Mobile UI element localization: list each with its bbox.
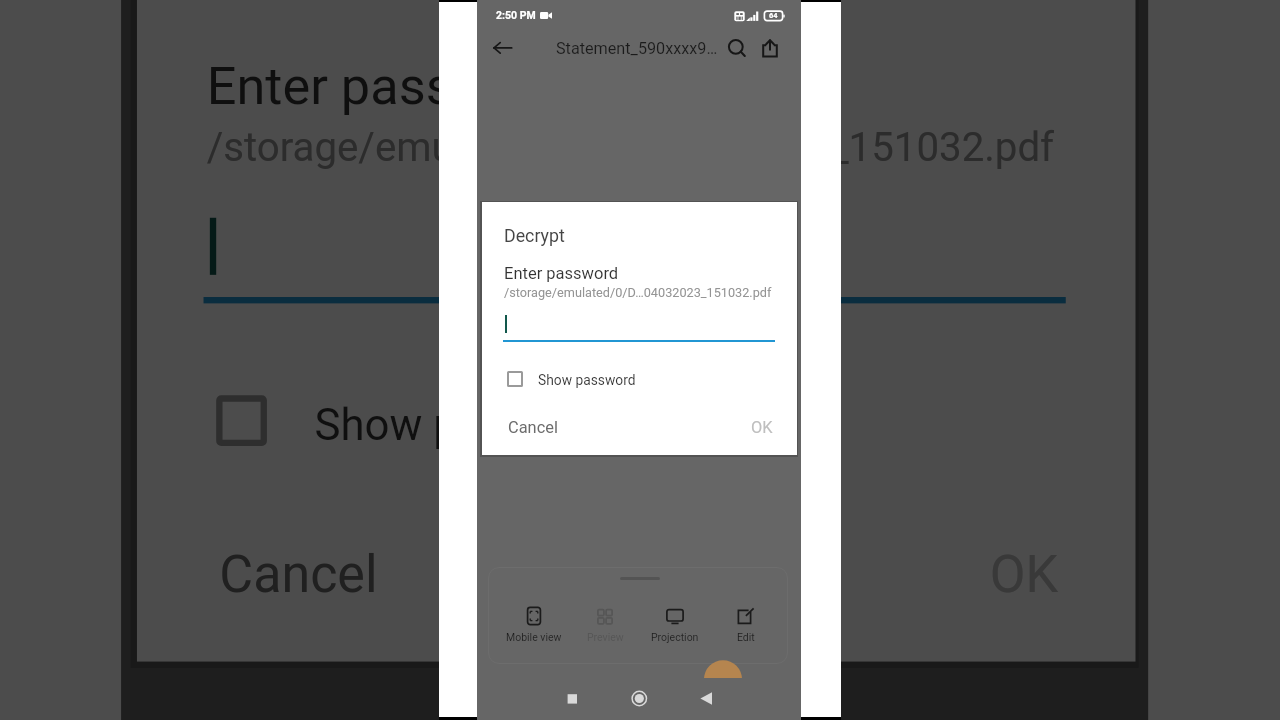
staticText: Mobile view — [506, 631, 562, 643]
staticText: OK — [990, 544, 1059, 604]
button[interactable]: Show password — [197, 364, 799, 484]
staticText: Enter password — [207, 56, 571, 116]
button[interactable]: Mobile view — [499, 598, 569, 650]
staticText: Show password — [314, 398, 625, 449]
button[interactable]: Recent apps — [549, 683, 589, 715]
staticText: Show password — [538, 372, 636, 388]
staticText: /storage/emulated/0/D…04032023_151032.pd… — [207, 123, 1056, 170]
button[interactable]: OK — [926, 513, 1123, 627]
button[interactable]: Back — [485, 32, 517, 66]
button[interactable]: Compose — [704, 660, 742, 678]
staticText: Statement_590xxxx9… — [556, 39, 718, 58]
button[interactable]: Share — [755, 32, 787, 66]
button[interactable]: Projection — [640, 598, 710, 650]
staticText: Projection — [651, 631, 699, 643]
button[interactable]: Show password — [501, 361, 691, 399]
button[interactable]: Edit — [711, 598, 781, 650]
staticText: OK — [751, 418, 773, 437]
staticText: Cancel — [508, 418, 558, 437]
staticText: Preview — [587, 631, 624, 643]
staticText: 64 — [769, 11, 778, 20]
button[interactable]: Back — [685, 683, 725, 715]
staticText: /storage/emulated/0/D…04032023_151032.pd… — [504, 285, 772, 300]
button[interactable]: Home — [618, 683, 658, 715]
button[interactable]: Cancel — [499, 408, 567, 444]
staticText: 2:50 PM — [496, 9, 536, 21]
staticText: Decrypt — [504, 225, 565, 246]
button[interactable]: Preview — [570, 598, 640, 650]
button[interactable]: Search — [721, 32, 753, 66]
staticText: Edit — [737, 631, 755, 643]
button[interactable]: OK — [731, 408, 793, 444]
button[interactable]: Cancel — [191, 513, 406, 627]
staticText: Cancel — [219, 544, 378, 604]
staticText: Enter password — [504, 264, 619, 283]
